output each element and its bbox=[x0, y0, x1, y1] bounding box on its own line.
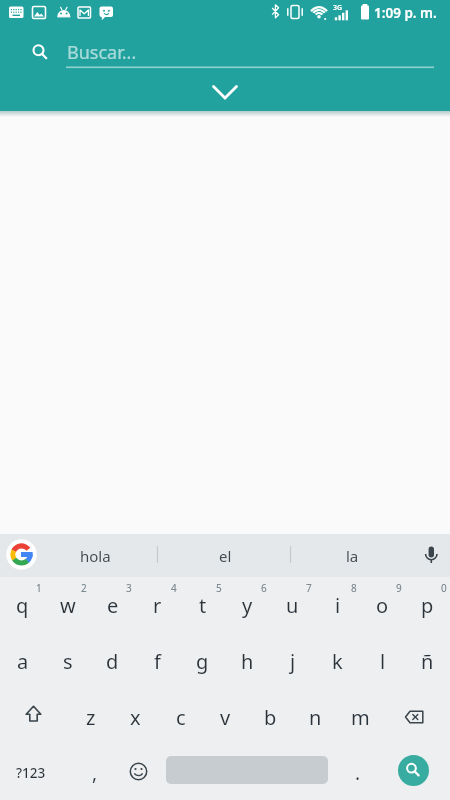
staticText: o bbox=[376, 592, 389, 619]
button[interactable] bbox=[382, 689, 450, 745]
staticText: , bbox=[92, 760, 98, 786]
button[interactable]: j bbox=[270, 633, 315, 689]
staticText: 2 bbox=[81, 581, 87, 595]
staticText: la bbox=[346, 546, 359, 566]
staticText: el bbox=[219, 546, 232, 566]
button[interactable]: la bbox=[317, 534, 387, 577]
button[interactable]: d bbox=[90, 633, 135, 689]
staticText: . bbox=[355, 760, 361, 786]
button[interactable]: n bbox=[293, 689, 338, 745]
button[interactable]: m bbox=[338, 689, 383, 745]
staticText: q bbox=[16, 592, 29, 619]
button[interactable]: p bbox=[405, 577, 450, 633]
button[interactable]: el bbox=[190, 534, 260, 577]
button[interactable] bbox=[398, 755, 429, 786]
staticText: l bbox=[380, 648, 386, 675]
button[interactable]: u bbox=[270, 577, 315, 633]
staticText: u bbox=[286, 592, 299, 619]
staticText: z bbox=[86, 704, 96, 731]
staticText: 3 bbox=[126, 581, 132, 595]
staticText: w bbox=[60, 592, 76, 619]
button[interactable]: q bbox=[0, 577, 45, 633]
button[interactable]: b bbox=[248, 689, 293, 745]
button[interactable]: g bbox=[180, 633, 225, 689]
button[interactable] bbox=[24, 32, 434, 72]
button[interactable]: w bbox=[45, 577, 90, 633]
staticText: n bbox=[309, 704, 322, 731]
staticText: 9 bbox=[396, 581, 402, 595]
staticText: y bbox=[242, 592, 253, 619]
button[interactable] bbox=[195, 75, 255, 105]
button[interactable]: . bbox=[334, 745, 382, 800]
button[interactable]: s bbox=[45, 633, 90, 689]
staticText: hola bbox=[80, 546, 111, 566]
staticText: 6 bbox=[261, 581, 267, 595]
button[interactable]: , bbox=[72, 745, 117, 800]
staticText: Buscar... bbox=[67, 40, 137, 65]
button[interactable]: x bbox=[113, 689, 158, 745]
staticText: ñ bbox=[421, 648, 434, 675]
button[interactable]: hola bbox=[55, 534, 135, 577]
button[interactable] bbox=[0, 689, 67, 745]
staticText: f bbox=[154, 648, 161, 675]
staticText: x bbox=[130, 704, 141, 731]
staticText: r bbox=[153, 592, 162, 619]
button[interactable]: c bbox=[158, 689, 203, 745]
staticText: b bbox=[264, 704, 277, 731]
staticText: 5 bbox=[216, 581, 222, 595]
staticText: 7 bbox=[306, 581, 312, 595]
staticText: k bbox=[332, 648, 343, 675]
button[interactable]: o bbox=[360, 577, 405, 633]
button[interactable] bbox=[117, 745, 160, 800]
staticText: 1 bbox=[36, 581, 42, 595]
button[interactable]: y bbox=[225, 577, 270, 633]
staticText: a bbox=[17, 648, 29, 675]
button[interactable]: i bbox=[315, 577, 360, 633]
button[interactable]: k bbox=[315, 633, 360, 689]
staticText: p bbox=[421, 592, 434, 619]
staticText: e bbox=[107, 592, 119, 619]
staticText: ?123 bbox=[16, 764, 46, 782]
button[interactable]: l bbox=[360, 633, 405, 689]
staticText: h bbox=[241, 648, 254, 675]
button[interactable]: e bbox=[90, 577, 135, 633]
button[interactable]: r bbox=[135, 577, 180, 633]
staticText: 1:09 p. m. bbox=[374, 4, 437, 22]
staticText: 4 bbox=[171, 581, 177, 595]
button[interactable]: z bbox=[68, 689, 113, 745]
staticText: v bbox=[220, 704, 231, 731]
button[interactable]: h bbox=[225, 633, 270, 689]
button[interactable]: ñ bbox=[405, 633, 450, 689]
button[interactable]: f bbox=[135, 633, 180, 689]
button[interactable] bbox=[410, 536, 450, 576]
staticText: j bbox=[290, 648, 296, 675]
staticText: i bbox=[335, 592, 341, 619]
staticText: 8 bbox=[351, 581, 357, 595]
staticText: 0 bbox=[441, 581, 447, 595]
staticText: 3G bbox=[333, 3, 343, 13]
staticText: t bbox=[199, 592, 207, 619]
staticText: m bbox=[351, 704, 370, 731]
button[interactable]: t bbox=[180, 577, 225, 633]
staticText: d bbox=[106, 648, 119, 675]
staticText: s bbox=[63, 648, 73, 675]
staticText: c bbox=[176, 704, 186, 731]
button[interactable]: ?123 bbox=[0, 745, 62, 800]
staticText: g bbox=[196, 648, 209, 675]
button[interactable]: a bbox=[0, 633, 45, 689]
button[interactable]: v bbox=[203, 689, 248, 745]
